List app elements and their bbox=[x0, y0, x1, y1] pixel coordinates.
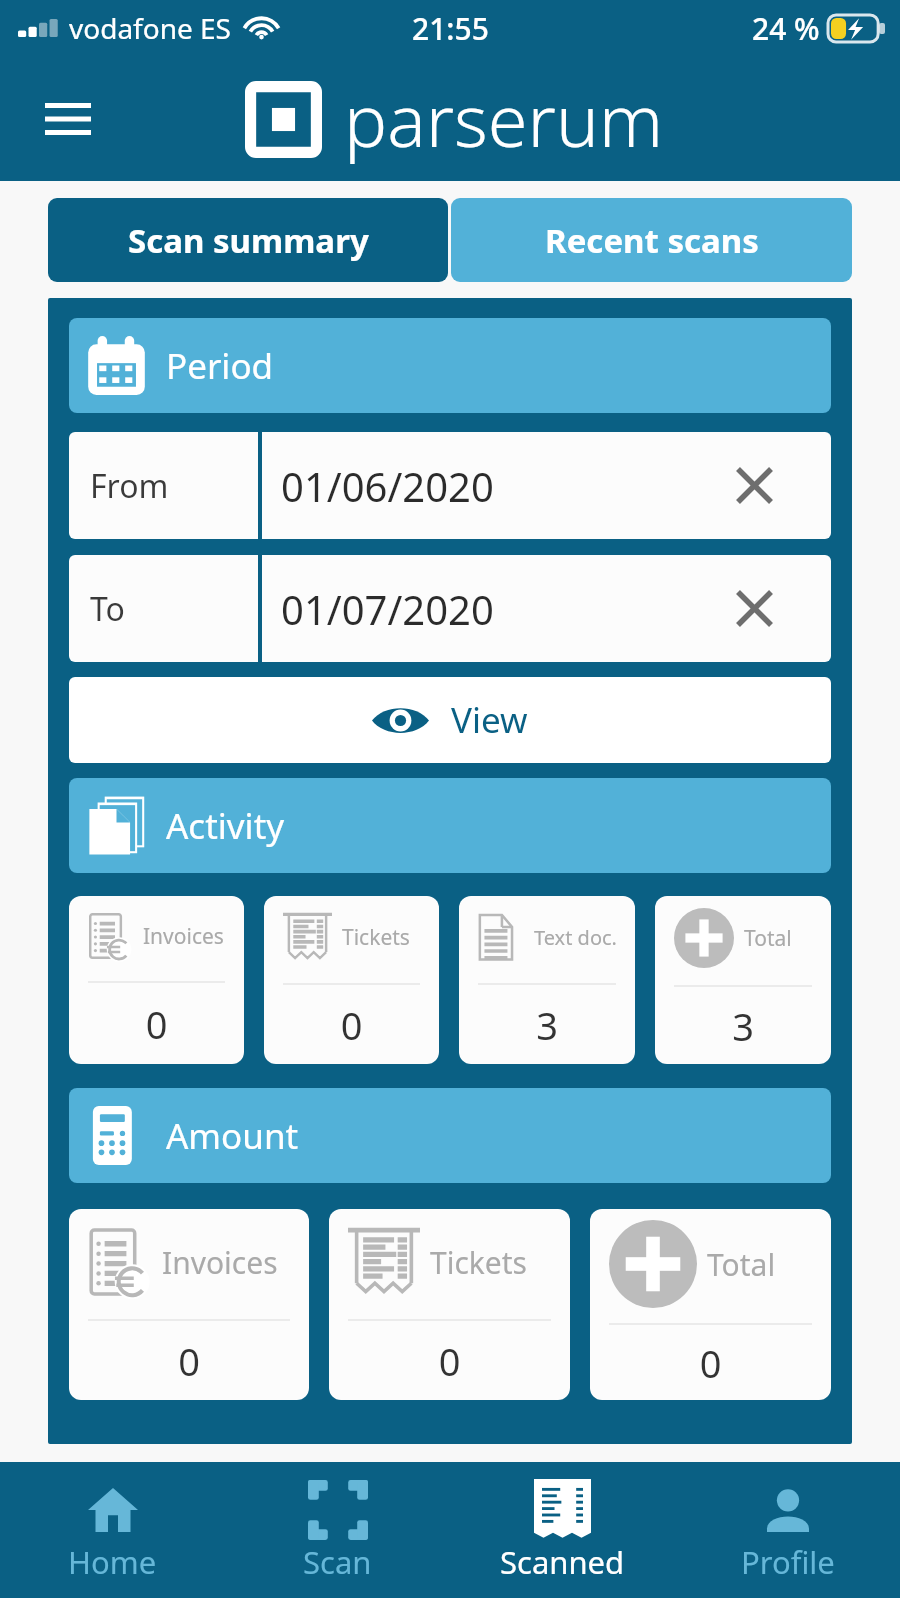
button[interactable]: Tickets bbox=[329, 1209, 570, 1400]
staticText: 0 bbox=[88, 998, 225, 1050]
staticText: Profile bbox=[741, 1541, 835, 1583]
button[interactable]: 01/07/2020 bbox=[262, 555, 831, 662]
staticText: parserum bbox=[344, 70, 664, 168]
staticText: Tickets bbox=[430, 1242, 527, 1283]
button[interactable]: 01/06/2020 bbox=[262, 432, 831, 539]
button[interactable]: Home bbox=[0, 1462, 225, 1598]
button[interactable]: Scan bbox=[225, 1462, 450, 1598]
button[interactable]: Tickets bbox=[264, 896, 439, 1064]
staticText: 0 bbox=[609, 1337, 812, 1389]
staticText: Recent scans bbox=[545, 218, 759, 263]
staticText: Tickets bbox=[342, 923, 410, 952]
button[interactable]: Scanned bbox=[450, 1462, 675, 1598]
staticText: 0 bbox=[348, 1335, 551, 1387]
staticText: 3 bbox=[478, 999, 616, 1051]
staticText: vodafone ES bbox=[69, 9, 231, 47]
staticText: Scanned bbox=[500, 1541, 625, 1583]
button[interactable]: Activity bbox=[69, 778, 831, 873]
button[interactable]: Total bbox=[590, 1209, 831, 1400]
staticText: To bbox=[90, 587, 125, 631]
button[interactable]: Period bbox=[69, 318, 831, 413]
staticText: 0 bbox=[283, 999, 420, 1051]
button[interactable]: Amount bbox=[69, 1088, 831, 1183]
staticText: Period bbox=[166, 342, 274, 390]
staticText: Total bbox=[707, 1244, 776, 1285]
staticText: Amount bbox=[166, 1112, 299, 1160]
staticText: View bbox=[451, 696, 528, 744]
staticText: Total bbox=[744, 924, 792, 953]
button[interactable]: View bbox=[69, 677, 831, 763]
staticText: Invoices bbox=[162, 1242, 278, 1283]
staticText: 21:55 bbox=[412, 8, 489, 49]
button[interactable]: Recent scans bbox=[451, 198, 852, 282]
button[interactable]: Scan summary bbox=[48, 198, 448, 282]
button[interactable]: Profile bbox=[675, 1462, 900, 1598]
staticText: From bbox=[90, 464, 169, 508]
staticText: Scan bbox=[303, 1541, 372, 1583]
button[interactable]: Total bbox=[655, 896, 831, 1064]
staticText: 0 bbox=[88, 1335, 290, 1387]
button[interactable]: Menu bbox=[36, 87, 100, 151]
staticText: Text doc. bbox=[534, 924, 616, 951]
staticText: Home bbox=[68, 1541, 157, 1583]
staticText: Invoices bbox=[143, 922, 224, 951]
staticText: 3 bbox=[674, 1000, 812, 1052]
button[interactable]: Invoices bbox=[69, 1209, 309, 1400]
staticText: 24 % bbox=[752, 8, 820, 49]
button[interactable]: Invoices bbox=[69, 896, 244, 1064]
staticText: 01/06/2020 bbox=[281, 459, 494, 513]
staticText: 01/07/2020 bbox=[281, 582, 494, 636]
staticText: Activity bbox=[166, 802, 285, 850]
button[interactable]: Text doc. bbox=[459, 896, 635, 1064]
staticText: Scan summary bbox=[128, 218, 369, 263]
